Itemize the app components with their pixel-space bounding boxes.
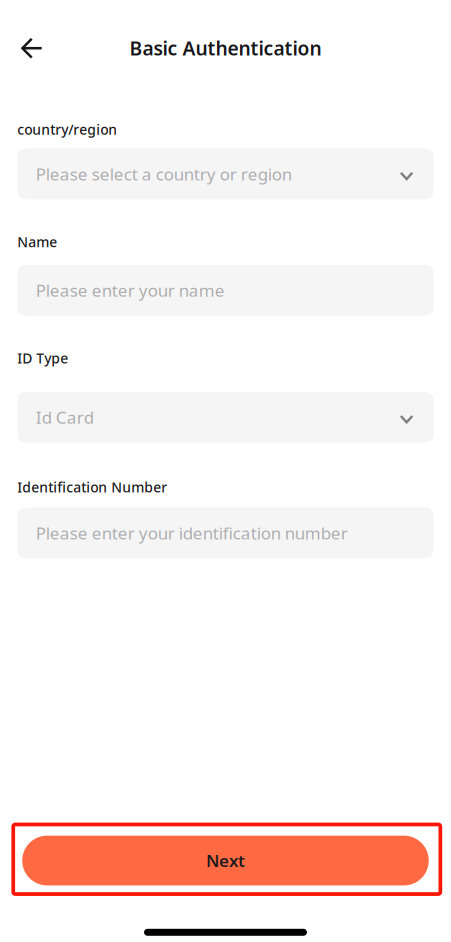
staticText: Basic Authentication [129, 35, 321, 61]
button[interactable]: Please enter your identification number [17, 508, 434, 559]
button[interactable]: Please enter your name [17, 265, 434, 316]
button[interactable]: Back [10, 25, 54, 69]
staticText: Please select a country or region [36, 162, 292, 185]
staticText: Next [206, 849, 245, 872]
staticText: Please enter your name [36, 279, 225, 302]
staticText: Name [17, 232, 57, 251]
button[interactable]: Next [22, 836, 429, 885]
button[interactable]: Please select a country or region [17, 148, 434, 199]
staticText: country/region [17, 120, 117, 139]
staticText: Id Card [36, 406, 94, 429]
staticText: ID Type [17, 349, 68, 368]
staticText: Identification Number [17, 478, 167, 497]
staticText: Please enter your identification number [36, 521, 348, 545]
button[interactable]: Id Card [17, 392, 434, 443]
